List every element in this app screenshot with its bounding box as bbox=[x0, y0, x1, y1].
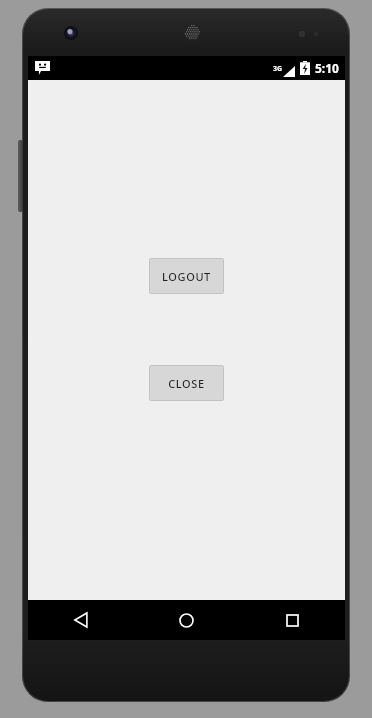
button[interactable]: Back bbox=[28, 600, 133, 640]
staticText: LOGOUT bbox=[162, 269, 211, 284]
button[interactable]: LOGOUT bbox=[149, 258, 224, 294]
staticText: 3G bbox=[273, 64, 283, 74]
button[interactable]: CLOSE bbox=[149, 365, 224, 401]
staticText: 5:10 bbox=[315, 60, 339, 76]
button[interactable]: Recent apps bbox=[239, 600, 345, 640]
button[interactable]: Home bbox=[133, 600, 239, 640]
staticText: CLOSE bbox=[168, 376, 205, 391]
